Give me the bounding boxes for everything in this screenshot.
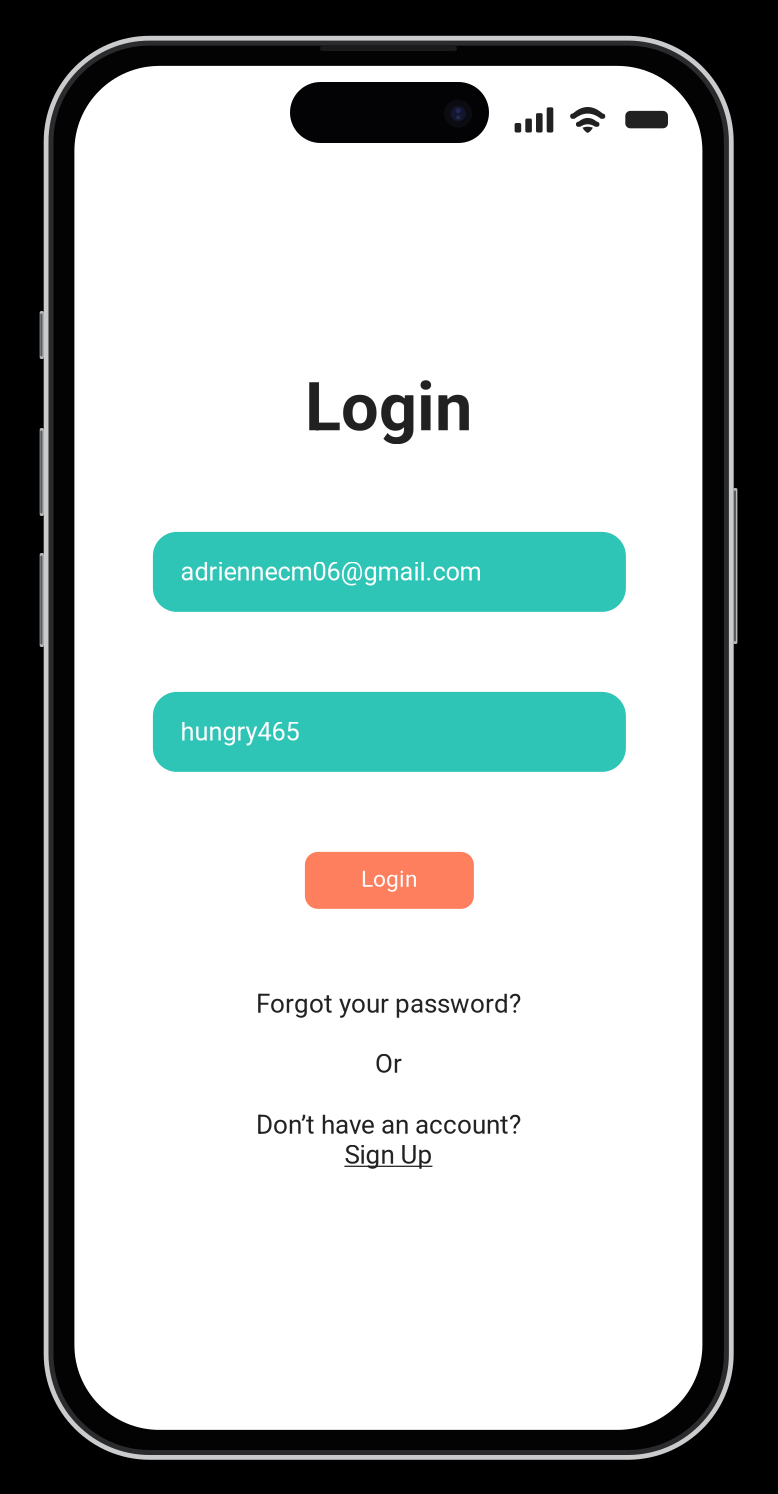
staticText: Sign Up (344, 1140, 432, 1170)
staticText: Login (305, 368, 472, 446)
staticText: Or (375, 1049, 402, 1079)
button[interactable]: Login (305, 852, 474, 909)
button[interactable]: Forgot your password? (74, 988, 702, 1020)
button[interactable]: Password (153, 692, 626, 772)
staticText: hungry465 (180, 717, 299, 747)
button[interactable]: Email (153, 532, 626, 612)
button[interactable]: Sign Up (74, 1139, 702, 1171)
staticText: Don’t have an account? (256, 1110, 521, 1140)
staticText: Login (361, 866, 418, 892)
staticText: Forgot your password? (256, 989, 521, 1019)
staticText: adriennecm06@gmail.com (180, 557, 481, 587)
